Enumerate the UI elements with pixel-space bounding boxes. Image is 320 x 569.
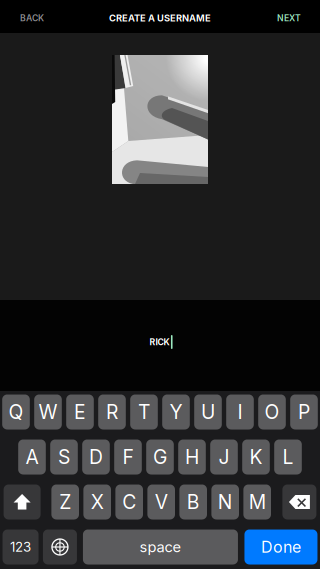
button[interactable]: R bbox=[98, 394, 126, 429]
staticText: 123 bbox=[10, 539, 31, 555]
button[interactable]: K bbox=[242, 439, 270, 474]
staticText: B bbox=[187, 490, 200, 514]
button[interactable]: X bbox=[83, 484, 111, 519]
staticText: H bbox=[185, 445, 199, 469]
staticText: O bbox=[264, 400, 279, 424]
button[interactable]: M bbox=[243, 484, 271, 519]
button[interactable]: F bbox=[114, 439, 142, 474]
staticText: S bbox=[58, 445, 70, 469]
button[interactable]: V bbox=[147, 484, 175, 519]
button[interactable]: A bbox=[18, 439, 46, 474]
button[interactable]: BACK bbox=[0, 0, 56, 33]
button[interactable]: C bbox=[115, 484, 143, 519]
staticText: I bbox=[237, 400, 242, 424]
staticText: Z bbox=[59, 490, 71, 514]
button[interactable]: Delete bbox=[282, 484, 316, 519]
button[interactable]: H bbox=[178, 439, 206, 474]
staticText: M bbox=[249, 490, 266, 514]
staticText: C bbox=[122, 490, 136, 514]
staticText: U bbox=[201, 400, 215, 424]
button[interactable]: Next keyboard bbox=[43, 529, 77, 564]
staticText: G bbox=[153, 445, 167, 469]
button[interactable]: D bbox=[82, 439, 110, 474]
button[interactable]: P bbox=[290, 394, 318, 429]
button[interactable]: B bbox=[179, 484, 207, 519]
button[interactable]: O bbox=[258, 394, 286, 429]
staticText: A bbox=[25, 445, 38, 469]
staticText: D bbox=[89, 445, 103, 469]
button[interactable]: Q bbox=[2, 394, 30, 429]
staticText: space bbox=[139, 538, 181, 556]
button[interactable]: E bbox=[66, 394, 94, 429]
staticText: T bbox=[138, 400, 150, 424]
button[interactable]: I bbox=[226, 394, 254, 429]
button[interactable]: Z bbox=[51, 484, 79, 519]
button[interactable]: T bbox=[130, 394, 158, 429]
button[interactable]: Y bbox=[162, 394, 190, 429]
staticText: F bbox=[122, 445, 133, 469]
staticText: E bbox=[74, 400, 86, 424]
button[interactable]: Done bbox=[244, 529, 317, 564]
staticText: Q bbox=[8, 400, 23, 424]
staticText: K bbox=[249, 445, 262, 469]
staticText: N bbox=[218, 490, 233, 514]
button[interactable]: N bbox=[211, 484, 239, 519]
button[interactable]: L bbox=[274, 439, 302, 474]
staticText: L bbox=[282, 445, 293, 469]
button[interactable]: NEXT bbox=[265, 0, 320, 33]
staticText: NEXT bbox=[277, 13, 301, 23]
staticText: BACK bbox=[20, 13, 44, 23]
button[interactable]: J bbox=[210, 439, 238, 474]
button[interactable]: G bbox=[146, 439, 174, 474]
staticText: W bbox=[38, 400, 57, 424]
button[interactable]: space bbox=[83, 529, 238, 564]
staticText: V bbox=[155, 490, 168, 514]
staticText: Y bbox=[169, 400, 182, 424]
button[interactable]: S bbox=[50, 439, 78, 474]
staticText: CREATE A USERNAME bbox=[109, 12, 211, 24]
staticText: RICK bbox=[149, 337, 169, 347]
staticText: J bbox=[218, 445, 229, 469]
button[interactable]: W bbox=[34, 394, 62, 429]
button[interactable]: 123 bbox=[3, 529, 39, 564]
button[interactable]: U bbox=[194, 394, 222, 429]
staticText: X bbox=[91, 490, 104, 514]
button[interactable]: Shift bbox=[4, 484, 41, 519]
staticText: P bbox=[298, 400, 310, 424]
staticText: Done bbox=[261, 537, 301, 557]
staticText: R bbox=[106, 400, 118, 424]
